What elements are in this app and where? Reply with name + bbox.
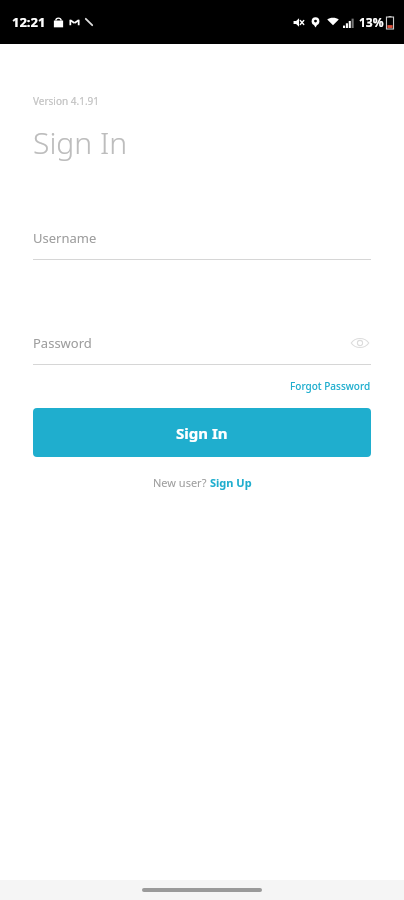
button[interactable]: Sign In <box>33 408 371 457</box>
staticText: 12:21 <box>12 13 46 31</box>
button[interactable]: Username <box>33 229 371 260</box>
staticText: Version 4.1.91 <box>33 94 100 108</box>
staticText: Username <box>33 229 97 247</box>
staticText: Sign In <box>176 423 228 443</box>
staticText: Forgot Password <box>290 379 371 393</box>
staticText: 13% <box>359 14 384 30</box>
staticText: New user? <box>153 475 210 490</box>
button[interactable]: Sign Up <box>210 475 252 490</box>
button[interactable]: Show password <box>349 332 371 354</box>
button[interactable]: Forgot Password <box>290 379 371 393</box>
staticText: Sign In <box>33 122 128 163</box>
staticText: Password <box>33 334 349 352</box>
staticText: Sign Up <box>210 475 252 490</box>
button[interactable]: Password <box>33 332 371 365</box>
